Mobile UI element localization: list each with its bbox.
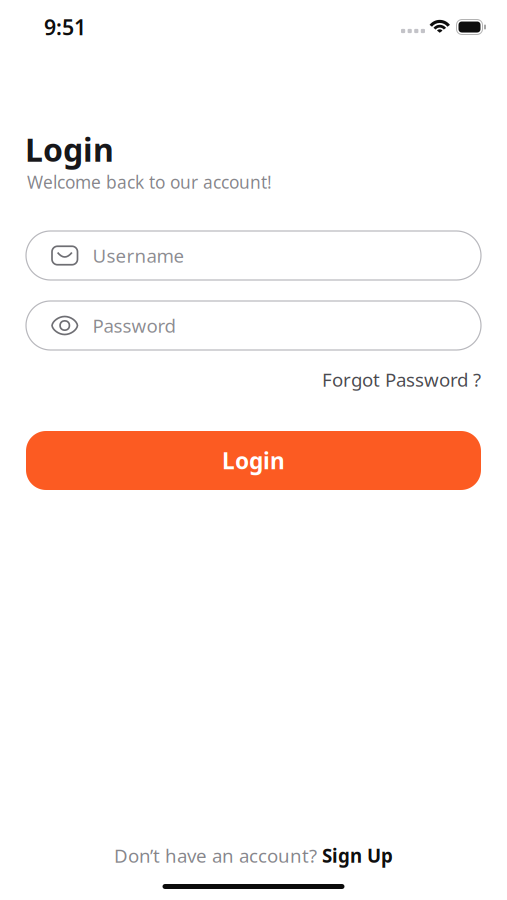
staticText: Login [25,128,114,170]
staticText: 9:51 [44,13,86,41]
button[interactable]: Don’t have an account? [114,843,393,868]
button[interactable]: Password [26,301,481,350]
staticText: Sign Up [322,843,393,868]
button[interactable]: Forgot Password ? [322,367,481,392]
button[interactable]: Login [26,431,481,490]
staticText: Login [222,445,285,475]
staticText: Don’t have an account? [114,843,317,868]
staticText: Welcome back to our account! [27,170,272,193]
staticText: Forgot Password ? [322,367,481,392]
button[interactable]: Username [26,231,481,280]
staticText: Password [92,313,175,338]
staticText: Username [92,243,184,268]
